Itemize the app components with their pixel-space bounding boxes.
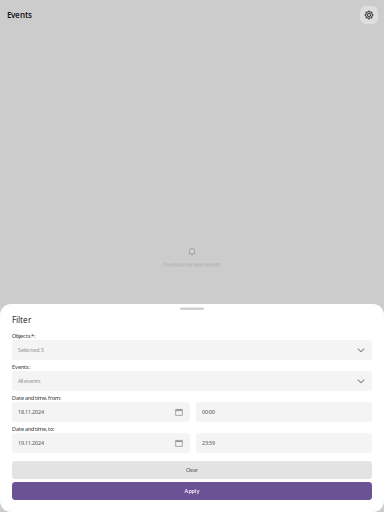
button[interactable]: Settings [360,6,378,24]
staticText: Selected: 5 [18,346,44,354]
button[interactable]: Apply [12,482,372,500]
staticText: Events: [12,363,30,371]
staticText: 18.11.2024 [18,408,44,416]
staticText: All events [18,377,41,385]
staticText: 00:00 [202,408,215,416]
button[interactable]: Selected: 5 [12,340,372,360]
button[interactable]: Clear [12,461,372,479]
staticText: Clear [186,466,198,474]
staticText: 19.11.2024 [18,439,44,447]
staticText: You have no new events [163,261,221,268]
staticText: Objects*: [12,332,35,340]
staticText: Date and time, from: [12,394,61,402]
button[interactable]: 19.11.2024 [12,433,190,453]
staticText: Date and time, to: [12,425,54,433]
button[interactable]: 18.11.2024 [12,402,190,422]
staticText: Filter [12,315,31,325]
button[interactable]: 23:59 [196,433,372,453]
staticText: Events [7,10,32,20]
button[interactable]: 00:00 [196,402,372,422]
button[interactable]: All events [12,371,372,391]
staticText: 23:59 [202,439,215,447]
staticText: Apply [184,487,199,495]
